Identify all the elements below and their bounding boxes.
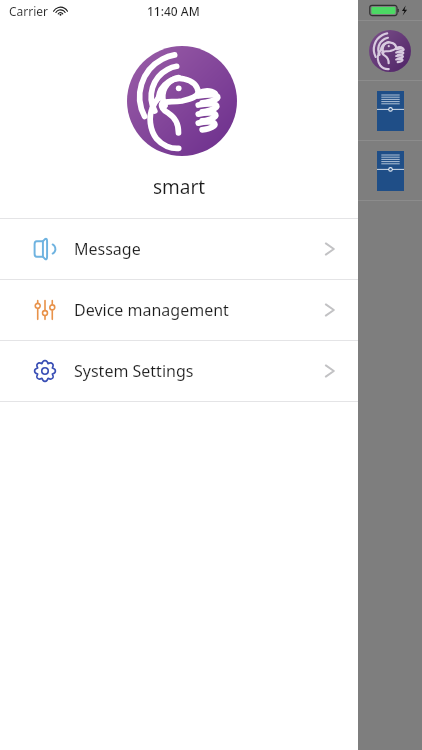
button[interactable]: Device management — [0, 280, 358, 340]
staticText: Carrier — [9, 3, 49, 19]
other: Open — [324, 239, 336, 259]
staticText: Message — [74, 238, 141, 260]
button[interactable]: Server app 2 — [358, 141, 422, 200]
staticText: System Settings — [74, 360, 194, 382]
button[interactable]: System Settings — [0, 341, 358, 401]
button[interactable]: smart app — [358, 21, 422, 80]
other: Open — [324, 361, 336, 381]
staticText: 11:40 AM — [147, 3, 200, 19]
staticText: smart — [0, 174, 358, 200]
other: Open — [324, 300, 336, 320]
button[interactable]: Message — [0, 219, 358, 279]
staticText: Device management — [74, 299, 229, 321]
button[interactable]: Server app — [358, 81, 422, 140]
